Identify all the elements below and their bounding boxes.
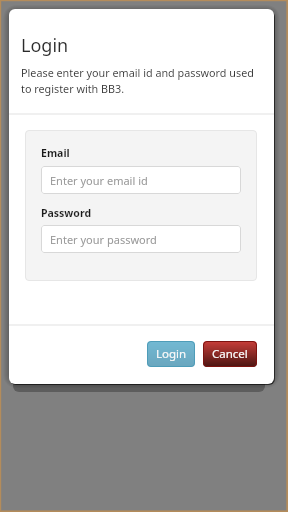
staticText: Login xyxy=(156,346,187,362)
staticText: Cancel xyxy=(212,346,248,362)
staticText: Enter your password xyxy=(50,232,157,247)
button[interactable]: Login xyxy=(147,341,195,367)
button[interactable]: Enter your email id xyxy=(41,166,241,194)
staticText: Email xyxy=(41,146,70,160)
staticText: Please enter your email id and password … xyxy=(21,65,261,96)
staticText: Password xyxy=(41,206,92,220)
button[interactable]: Enter your password xyxy=(41,225,241,253)
staticText: Enter your email id xyxy=(50,173,148,188)
staticText: Login xyxy=(21,33,69,58)
button[interactable]: Cancel xyxy=(203,341,257,367)
